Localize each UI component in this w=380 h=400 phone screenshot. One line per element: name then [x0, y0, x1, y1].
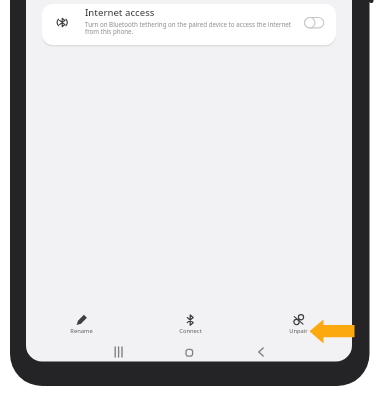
button[interactable]: Unpair — [276, 313, 320, 335]
button[interactable] — [246, 340, 276, 364]
staticText: Turn on Bluetooth tethering on the paire… — [85, 20, 292, 36]
button[interactable]: Rename — [59, 313, 103, 335]
staticText: Unpair — [289, 327, 308, 335]
staticText: Internet access — [85, 6, 155, 19]
button[interactable] — [104, 340, 134, 364]
button[interactable]: Connect — [168, 313, 212, 335]
button[interactable] — [301, 14, 331, 32]
staticText: Rename — [70, 327, 93, 335]
staticText: Connect — [179, 327, 202, 335]
button[interactable]: Internet access — [42, 4, 336, 45]
button[interactable] — [174, 340, 204, 364]
